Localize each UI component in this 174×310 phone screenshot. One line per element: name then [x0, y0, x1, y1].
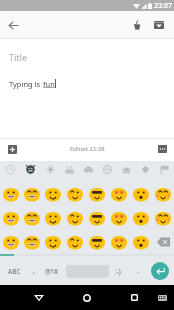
- button[interactable]: Archive: [149, 15, 169, 35]
- button[interactable]: Back: [29, 285, 48, 310]
- button[interactable]: @?#: [41, 260, 61, 282]
- button[interactable]: Flags: [155, 161, 174, 178]
- button[interactable]: Emoji: [152, 206, 174, 230]
- button[interactable]: Emoji: [42, 182, 64, 206]
- button[interactable]: Emoji: [21, 182, 42, 206]
- button[interactable]: Emoji: [86, 230, 108, 254]
- button[interactable]: ,: [27, 260, 40, 282]
- button[interactable]: Emoji: [0, 182, 21, 206]
- button[interactable]: Emoji: [64, 230, 86, 254]
- button[interactable]: Smileys: [20, 161, 40, 178]
- button[interactable]: Symbols: [136, 161, 155, 178]
- button[interactable]: Pin note: [126, 15, 146, 35]
- button[interactable]: Emoji: [86, 206, 108, 230]
- staticText: ABC: [8, 267, 21, 276]
- button[interactable]: Objects: [117, 161, 136, 178]
- staticText: Typing is: [9, 79, 43, 89]
- button[interactable]: Emoji: [152, 182, 174, 206]
- button[interactable]: Emoji: [108, 230, 130, 254]
- button[interactable]: Emoji: [0, 206, 21, 230]
- button[interactable]: Emoji: [130, 230, 152, 254]
- button[interactable]: Emoji: [42, 230, 64, 254]
- button[interactable]: Emoji: [130, 206, 152, 230]
- staticText: :-): [115, 267, 121, 276]
- staticText: 23:07: [154, 1, 172, 11]
- button[interactable]: Emoji: [64, 182, 86, 206]
- staticText: Title: [9, 51, 27, 63]
- button[interactable]: Add: [4, 141, 21, 158]
- button[interactable]: Backspace: [152, 230, 174, 254]
- button[interactable]: Back: [4, 16, 22, 34]
- button[interactable]: Emoji: [21, 230, 42, 254]
- button[interactable]: Food: [60, 161, 79, 178]
- button[interactable]: Emoji: [42, 206, 64, 230]
- button[interactable]: ABC: [1, 260, 27, 282]
- button[interactable]: :-): [111, 260, 125, 282]
- button[interactable]: Hide keyboard: [154, 285, 170, 310]
- button[interactable]: Recent apps: [125, 285, 144, 310]
- button[interactable]: Activity: [98, 161, 117, 178]
- button[interactable]: Nature: [40, 161, 60, 178]
- button[interactable]: Emoji: [108, 182, 130, 206]
- button[interactable]: Enter: [151, 262, 169, 280]
- button[interactable]: More options: [154, 141, 170, 157]
- button[interactable]: Home: [77, 285, 96, 310]
- button[interactable]: Travel: [79, 161, 98, 178]
- button[interactable]: Emoji: [86, 182, 108, 206]
- staticText: ,: [33, 266, 35, 276]
- button[interactable]: Emoji: [130, 182, 152, 206]
- button[interactable]: Emoji: [0, 230, 21, 254]
- staticText: .: [137, 266, 139, 276]
- staticText: @?#: [45, 267, 58, 276]
- staticText: fun: [43, 79, 55, 89]
- button[interactable]: Emoji: [64, 206, 86, 230]
- button[interactable]: Emoji: [21, 206, 42, 230]
- button[interactable]: Emoji: [108, 206, 130, 230]
- staticText: Edited 22:38: [70, 145, 105, 153]
- button[interactable]: Recent: [0, 161, 20, 178]
- button[interactable]: .: [132, 260, 144, 282]
